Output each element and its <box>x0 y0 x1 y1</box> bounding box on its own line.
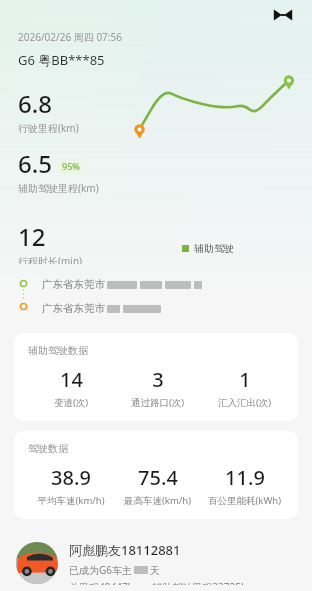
button[interactable]: 辅助驾驶数据 <box>14 333 298 421</box>
button[interactable]: 阿彪鹏友18112881 <box>0 535 312 591</box>
staticText: 总里程49447km，辅助驾驶里程33725km <box>69 580 256 585</box>
staticText: G6 粤BB***85 <box>18 51 105 69</box>
staticText: 75.4 <box>138 464 178 491</box>
staticText: 1 <box>239 366 251 393</box>
staticText: 95% <box>62 160 80 172</box>
staticText: 3 <box>152 366 164 393</box>
staticText: 驾驶数据 <box>28 442 68 455</box>
staticText: 辅助驾驶数据 <box>28 344 88 357</box>
staticText: 已成为G6车主 <box>69 563 132 577</box>
button[interactable]: Close <box>270 2 296 28</box>
staticText: 百公里能耗(kWh) <box>201 494 288 507</box>
staticText: 变道(次) <box>28 396 114 409</box>
staticText: 阿彪鹏友18112881 <box>69 541 181 559</box>
staticText: 行驶里程(km) <box>18 121 79 135</box>
staticText: 广东省东莞市 <box>42 278 105 291</box>
staticText: 汇入汇出(次) <box>201 396 288 409</box>
staticText: 平均车速(km/h) <box>28 494 114 507</box>
staticText: 最高车速(km/h) <box>114 494 201 507</box>
staticText: 12 <box>18 220 46 253</box>
button[interactable]: 驾驶数据 <box>14 431 298 519</box>
staticText: 6.5 <box>18 147 52 180</box>
staticText: 辅助驾驶 <box>194 242 234 255</box>
staticText: 行程时长(min) <box>18 254 83 264</box>
staticText: 6.8 <box>18 87 52 120</box>
staticText: 天 <box>150 564 160 577</box>
staticText: 广东省东莞市 <box>42 302 105 315</box>
staticText: 2026/02/26 周四 07:56 <box>18 30 122 44</box>
staticText: 38.9 <box>51 464 91 491</box>
staticText: 通过路口(次) <box>114 396 201 409</box>
staticText: 14 <box>60 366 83 393</box>
staticText: 11.9 <box>225 464 265 491</box>
staticText: 辅助驾驶里程(km) <box>18 181 99 195</box>
